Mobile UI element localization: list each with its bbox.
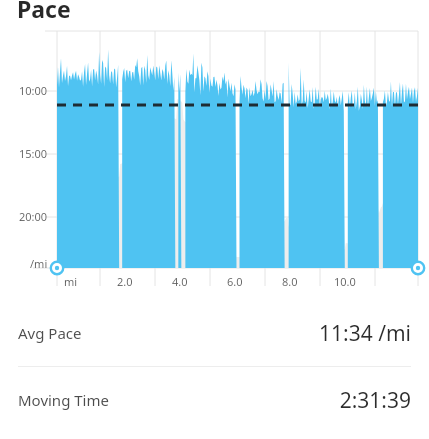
staticText: Moving Time [18, 390, 109, 410]
button[interactable]: Pace chart [0, 0, 429, 292]
staticText: 10.0 [334, 274, 356, 289]
staticText: Avg Pace [18, 323, 82, 343]
staticText: /mi [30, 256, 48, 271]
button[interactable]: Moving Time [0, 367, 429, 433]
staticText: 20:00 [19, 209, 48, 224]
staticText: 6.0 [227, 274, 243, 289]
staticText: 11:34 /mi [318, 319, 411, 348]
staticText: 2:31:39 [339, 386, 411, 415]
staticText: 15:00 [19, 146, 48, 161]
staticText: 8.0 [282, 274, 298, 289]
staticText: mi [64, 274, 78, 289]
staticText: Pace [17, 0, 71, 24]
staticText: 2.0 [117, 274, 133, 289]
staticText: 4.0 [172, 274, 188, 289]
button[interactable]: Avg Pace [0, 300, 429, 366]
staticText: 10:00 [19, 83, 48, 98]
